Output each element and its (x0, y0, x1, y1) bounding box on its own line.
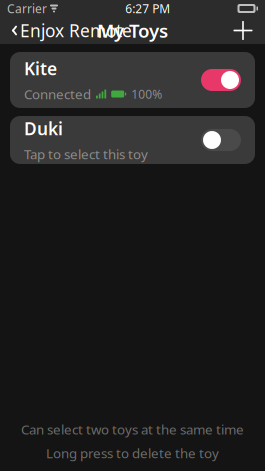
button[interactable]: Enjox Remote (3, 15, 138, 46)
staticText: Long press to delete the toy (46, 444, 219, 462)
staticText: 6:27 PM (125, 0, 170, 16)
staticText: 100% (131, 86, 162, 102)
staticText: Connected (24, 85, 91, 103)
staticText: Enjox Remote (20, 19, 132, 42)
button[interactable]: Kite (10, 52, 255, 108)
staticText: Tap to select this toy (24, 145, 148, 163)
staticText: Carrier (7, 0, 47, 16)
staticText: Duki (24, 117, 63, 140)
button[interactable]: Duki (10, 116, 255, 164)
staticText: Kite (24, 57, 57, 80)
staticText: My Toys (97, 18, 168, 43)
staticText: Can select two toys at the same time (21, 421, 244, 438)
button[interactable]: Add toy (224, 15, 262, 45)
